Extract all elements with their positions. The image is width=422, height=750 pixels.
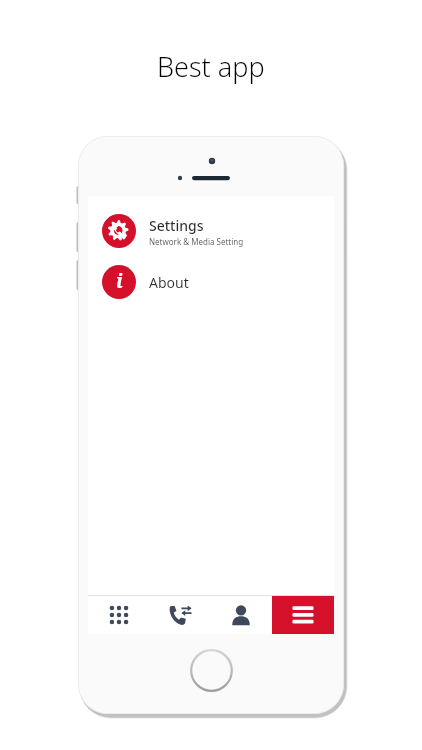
staticText: i <box>116 268 123 294</box>
button[interactable]: Contacts <box>210 596 272 634</box>
staticText: Network & Media Setting <box>149 236 244 247</box>
button[interactable]: Settings <box>88 208 334 254</box>
button[interactable]: i <box>88 260 334 304</box>
staticText: About <box>149 273 189 292</box>
button[interactable]: Dialpad <box>88 596 149 634</box>
staticText: Best app <box>157 48 265 85</box>
button[interactable]: Menu <box>272 596 334 634</box>
staticText: Settings <box>149 216 204 235</box>
button[interactable]: Call log <box>149 596 210 634</box>
